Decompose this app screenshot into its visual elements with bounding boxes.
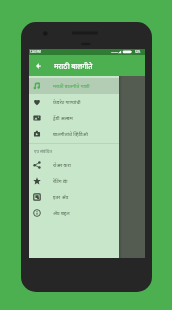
staticText: रेटिंग द्या (53, 178, 68, 185)
button[interactable]: शेअर करा (29, 157, 119, 173)
staticText: बालगीतांचे व्हिडिओ (53, 131, 88, 138)
staticText: 52% (135, 50, 141, 54)
staticText: मराठी बालगीते गाणी (53, 83, 90, 90)
button[interactable]: इतर ॲप (29, 189, 119, 205)
staticText: शेअर करा (53, 162, 71, 169)
button[interactable]: फेवरेट गाण्यांची (29, 94, 119, 110)
staticText: ॲप बद्दल (53, 210, 70, 217)
staticText: मराठी बालगीते (54, 61, 93, 71)
button[interactable]: मराठी बालगीते गाणी (29, 78, 119, 94)
staticText: इतर ॲप (53, 194, 69, 201)
button[interactable]: बालगीतांचे व्हिडिओ (29, 126, 119, 142)
staticText: 12:00 PM (30, 50, 41, 53)
button[interactable]: Back (30, 55, 46, 76)
button[interactable]: ट्रेंडी अल्बम (29, 110, 119, 126)
staticText: एप संबंधित (34, 148, 52, 154)
button[interactable]: ॲप बद्दल (29, 205, 119, 221)
staticText: फेवरेट गाण्यांची (53, 99, 81, 106)
staticText: ट्रेंडी अल्बम (53, 115, 73, 122)
staticText: VoLTE (111, 50, 118, 53)
button[interactable]: रेटिंग द्या (29, 173, 119, 189)
